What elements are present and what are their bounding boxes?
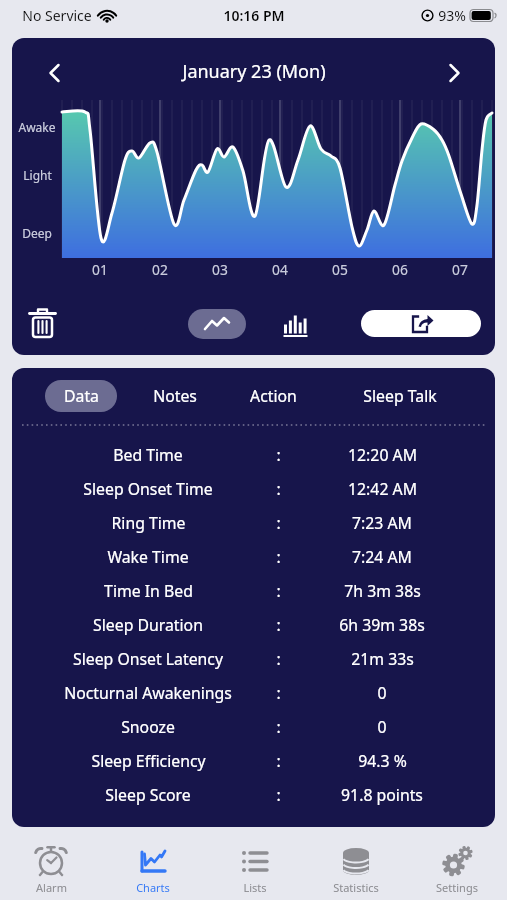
staticText: Sleep Talk [363,385,437,407]
staticText: 7:24 AM [352,546,412,568]
button[interactable] [24,304,60,342]
staticText: : [276,512,281,534]
staticText: 21m 33s [351,648,414,670]
staticText: 07 [452,260,468,278]
staticText: Snooze [121,716,175,738]
staticText: Sleep Efficiency [91,750,206,772]
button[interactable]: Sleep Talk [355,380,445,412]
staticText: Notes [153,385,197,407]
staticText: : [276,580,281,602]
staticText: : [276,478,281,500]
staticText: Ring Time [111,512,186,534]
staticText: 05 [332,260,348,278]
staticText: 91.8 points [341,784,423,806]
staticText: : [276,444,281,466]
staticText: Sleep Onset Latency [73,648,223,670]
button[interactable] [448,63,461,83]
staticText: Data [64,385,99,407]
staticText: 10:16 PM [223,6,285,25]
staticText: : [276,614,281,636]
button[interactable]: Data [45,380,117,412]
staticText: Wake Time [107,546,189,568]
staticText: : [276,682,281,704]
button[interactable]: Alarm [0,844,102,900]
staticText: Time In Bed [104,580,193,602]
staticText: 06 [392,260,408,278]
staticText: Sleep Score [105,784,191,806]
button[interactable]: Lists [204,844,305,900]
staticText: Settings [436,880,478,895]
staticText: 7:23 AM [352,512,412,534]
staticText: : [276,750,281,772]
button[interactable]: Charts [102,844,204,900]
staticText: : [276,784,281,806]
staticText: Statistics [333,880,379,895]
staticText: 6h 39m 38s [339,614,425,636]
staticText: 12:42 AM [348,478,417,500]
staticText: No Service [22,6,92,25]
staticText: 03 [212,260,228,278]
button[interactable] [276,309,314,339]
staticText: January 23 (Mon) [182,59,326,84]
button[interactable] [48,63,61,83]
staticText: 94.3 % [358,750,407,772]
staticText: 0 [377,682,387,704]
staticText: : [276,546,281,568]
staticText: Awake [18,119,56,135]
staticText: Light [23,167,52,183]
staticText: : [276,648,281,670]
staticText: 12:20 AM [348,444,417,466]
staticText: Action [250,385,297,407]
staticText: 02 [152,260,168,278]
staticText: Sleep Duration [93,614,203,636]
button[interactable] [188,309,246,339]
button[interactable]: Statistics [305,844,406,900]
staticText: 7h 3m 38s [344,580,421,602]
staticText: : [276,716,281,738]
button[interactable] [361,310,481,337]
staticText: Charts [136,880,170,895]
staticText: Alarm [36,880,67,895]
button[interactable]: Notes [145,380,205,412]
staticText: Lists [243,880,267,895]
staticText: 01 [92,260,108,278]
staticText: 0 [377,716,387,738]
staticText: 04 [272,260,288,278]
staticText: Bed Time [113,444,183,466]
button[interactable]: Settings [406,844,507,900]
staticText: 93% [438,6,466,25]
staticText: Deep [22,225,52,241]
staticText: Sleep Onset Time [83,478,213,500]
button[interactable]: Action [243,380,303,412]
staticText: Nocturnal Awakenings [64,682,232,704]
